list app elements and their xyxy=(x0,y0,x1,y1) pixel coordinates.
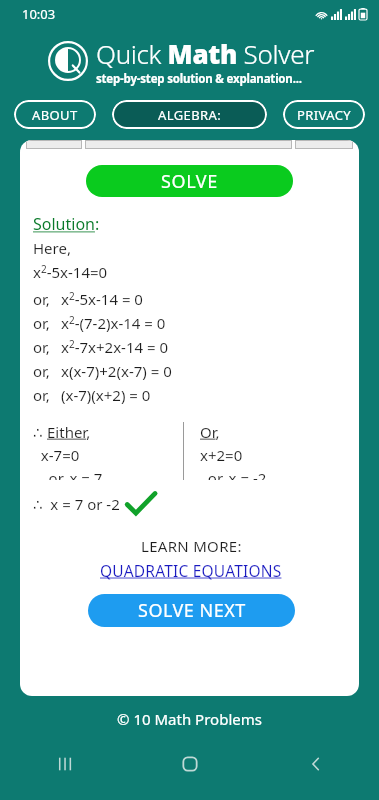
staticText: Either, xyxy=(47,422,91,442)
staticText: x-7=0 xyxy=(33,445,80,465)
staticText: ∴ x = 7 or -2 xyxy=(33,494,120,514)
staticText: Or, xyxy=(200,422,220,442)
button[interactable]: SOLVE NEXT xyxy=(88,594,295,627)
button[interactable]: SOLVE xyxy=(86,165,293,197)
staticText: PRIVACY xyxy=(297,106,352,124)
staticText: ABOUT xyxy=(32,106,78,124)
button[interactable]: QUADRATIC EQUATIONS xyxy=(100,560,282,581)
staticText: Solution: xyxy=(33,213,100,235)
staticText: x2-5x-14 = 0 xyxy=(61,289,143,309)
button[interactable]: ALGEBRA: xyxy=(112,100,267,129)
staticText: x+2=0 xyxy=(200,445,243,465)
staticText: or, xyxy=(33,337,50,357)
staticText: (x-7)(x+2) = 0 xyxy=(61,385,151,405)
staticText: or, xyxy=(33,361,50,381)
button[interactable]: Back xyxy=(253,742,379,786)
staticText: 10:03 xyxy=(22,5,56,23)
staticText: SOLVE xyxy=(161,169,218,194)
staticText: or, x = -2 xyxy=(200,468,267,480)
staticText: or, xyxy=(33,313,50,333)
staticText: Quick Math Solver xyxy=(96,36,315,71)
staticText: or, x = 7 xyxy=(33,468,103,480)
staticText: or, xyxy=(33,385,50,405)
staticText: ∴ xyxy=(33,422,47,442)
staticText: LEARN MORE: xyxy=(141,536,242,556)
staticText: QUADRATIC EQUATIONS xyxy=(100,560,282,581)
button[interactable]: Home xyxy=(127,742,253,786)
staticText: step-by-step solution & explanation... xyxy=(96,71,302,87)
staticText: x2-(7-2)x-14 = 0 xyxy=(61,313,166,333)
staticText: x2-5x-14=0 xyxy=(33,262,108,282)
staticText: x(x-7)+2(x-7) = 0 xyxy=(61,361,172,381)
button[interactable]: ABOUT xyxy=(14,100,96,129)
staticText: SOLVE NEXT xyxy=(138,598,246,623)
staticText: ALGEBRA: xyxy=(158,106,222,124)
staticText: Here, xyxy=(33,238,71,258)
staticText: © 10 Math Problems xyxy=(117,709,262,729)
button[interactable]: PRIVACY xyxy=(283,100,365,129)
button[interactable]: Recent apps xyxy=(0,742,127,786)
staticText: x2-7x+2x-14 = 0 xyxy=(61,337,169,357)
staticText: or, xyxy=(33,289,50,309)
